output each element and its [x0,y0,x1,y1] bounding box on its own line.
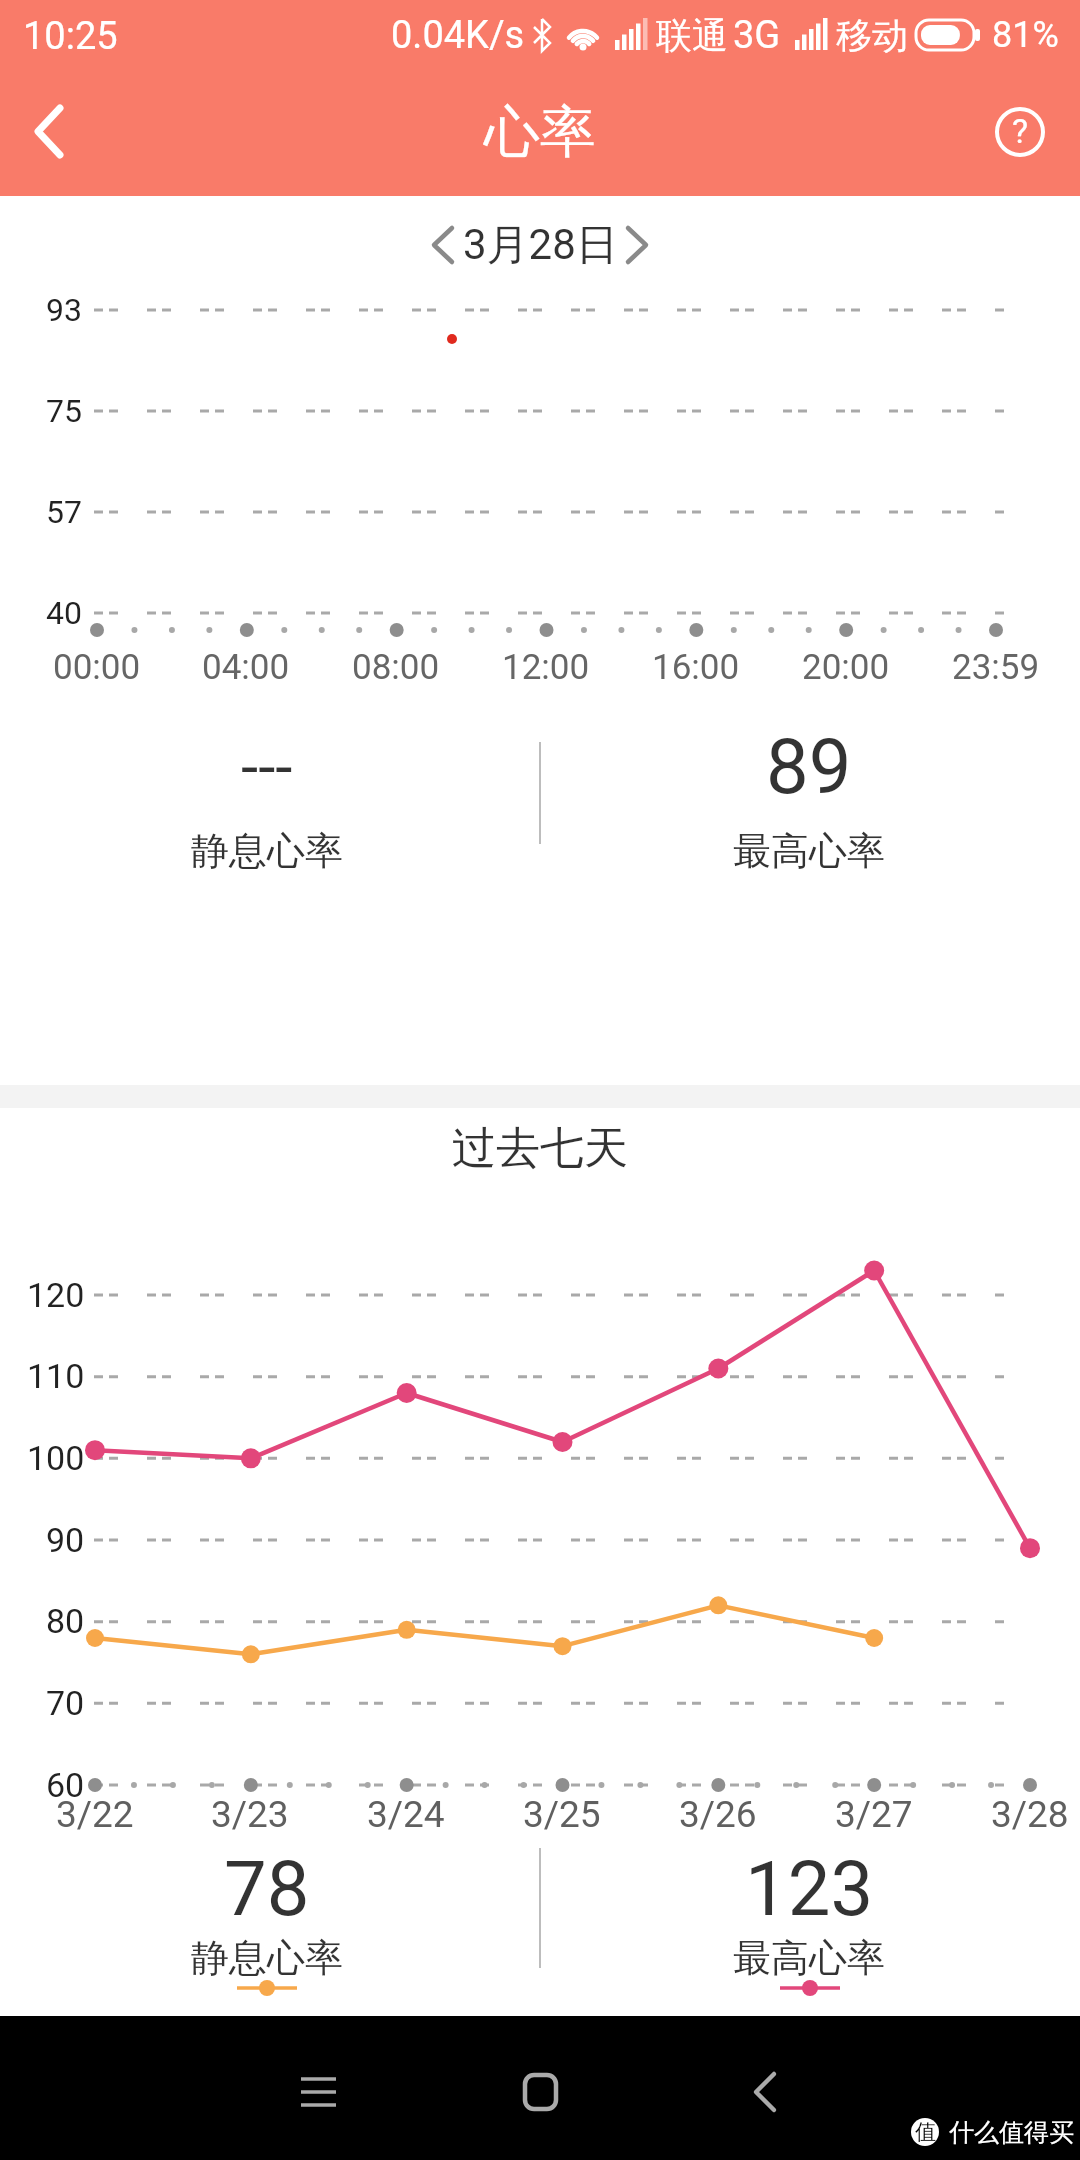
staticText: 最高心率 [733,827,885,875]
staticText: --- [241,730,293,803]
staticText: 3/25 [523,1793,601,1836]
staticText: 10:25 [23,14,118,59]
button[interactable] [410,212,480,282]
staticText: 90 [46,1520,85,1560]
staticText: 最高心率 [733,1934,885,1982]
staticText: 3/27 [835,1793,913,1836]
staticText: ? [1012,111,1029,151]
staticText: 12:00 [502,647,590,688]
staticText: 值 [915,2119,936,2145]
staticText: 60 [46,1765,85,1805]
staticText: 123 [745,1844,874,1933]
staticText: 联通 [656,13,728,58]
button[interactable] [985,97,1055,167]
staticText: 57 [46,493,82,531]
staticText: 110 [27,1356,85,1396]
staticText: 什么值得买 [949,2117,1074,2148]
staticText: 20:00 [802,647,890,688]
staticText: 08:00 [352,647,440,688]
staticText: 3/28 [991,1793,1069,1836]
staticText: 3G [733,13,781,58]
staticText: 80 [46,1601,85,1641]
staticText: 40 [46,594,82,632]
staticText: 3/26 [679,1793,757,1836]
staticText: 过去七天 [452,1121,628,1176]
button[interactable] [8,86,98,176]
staticText: 0.04K/s [391,13,525,58]
button[interactable] [270,2044,366,2140]
staticText: 静息心率 [191,827,343,875]
staticText: 心率 [484,97,596,168]
staticText: 89 [766,722,852,811]
button[interactable] [602,212,672,282]
staticText: 23:59 [952,647,1040,688]
staticText: 静息心率 [191,1934,343,1982]
staticText: 100 [27,1438,85,1478]
staticText: 3/22 [56,1793,134,1836]
button[interactable] [492,2044,588,2140]
staticText: 120 [27,1275,85,1315]
staticText: 04:00 [202,647,290,688]
staticText: 16:00 [652,647,740,688]
staticText: 81% [992,14,1059,56]
staticText: 3/23 [211,1793,289,1836]
staticText: 3/24 [367,1793,445,1836]
staticText: 78 [224,1844,310,1933]
staticText: 3月28日 [463,219,618,272]
staticText: 00:00 [53,647,141,688]
staticText: 93 [46,291,82,329]
staticText: 70 [46,1683,85,1723]
staticText: 75 [46,392,82,430]
button[interactable] [717,2044,813,2140]
staticText: 移动 [836,13,908,58]
